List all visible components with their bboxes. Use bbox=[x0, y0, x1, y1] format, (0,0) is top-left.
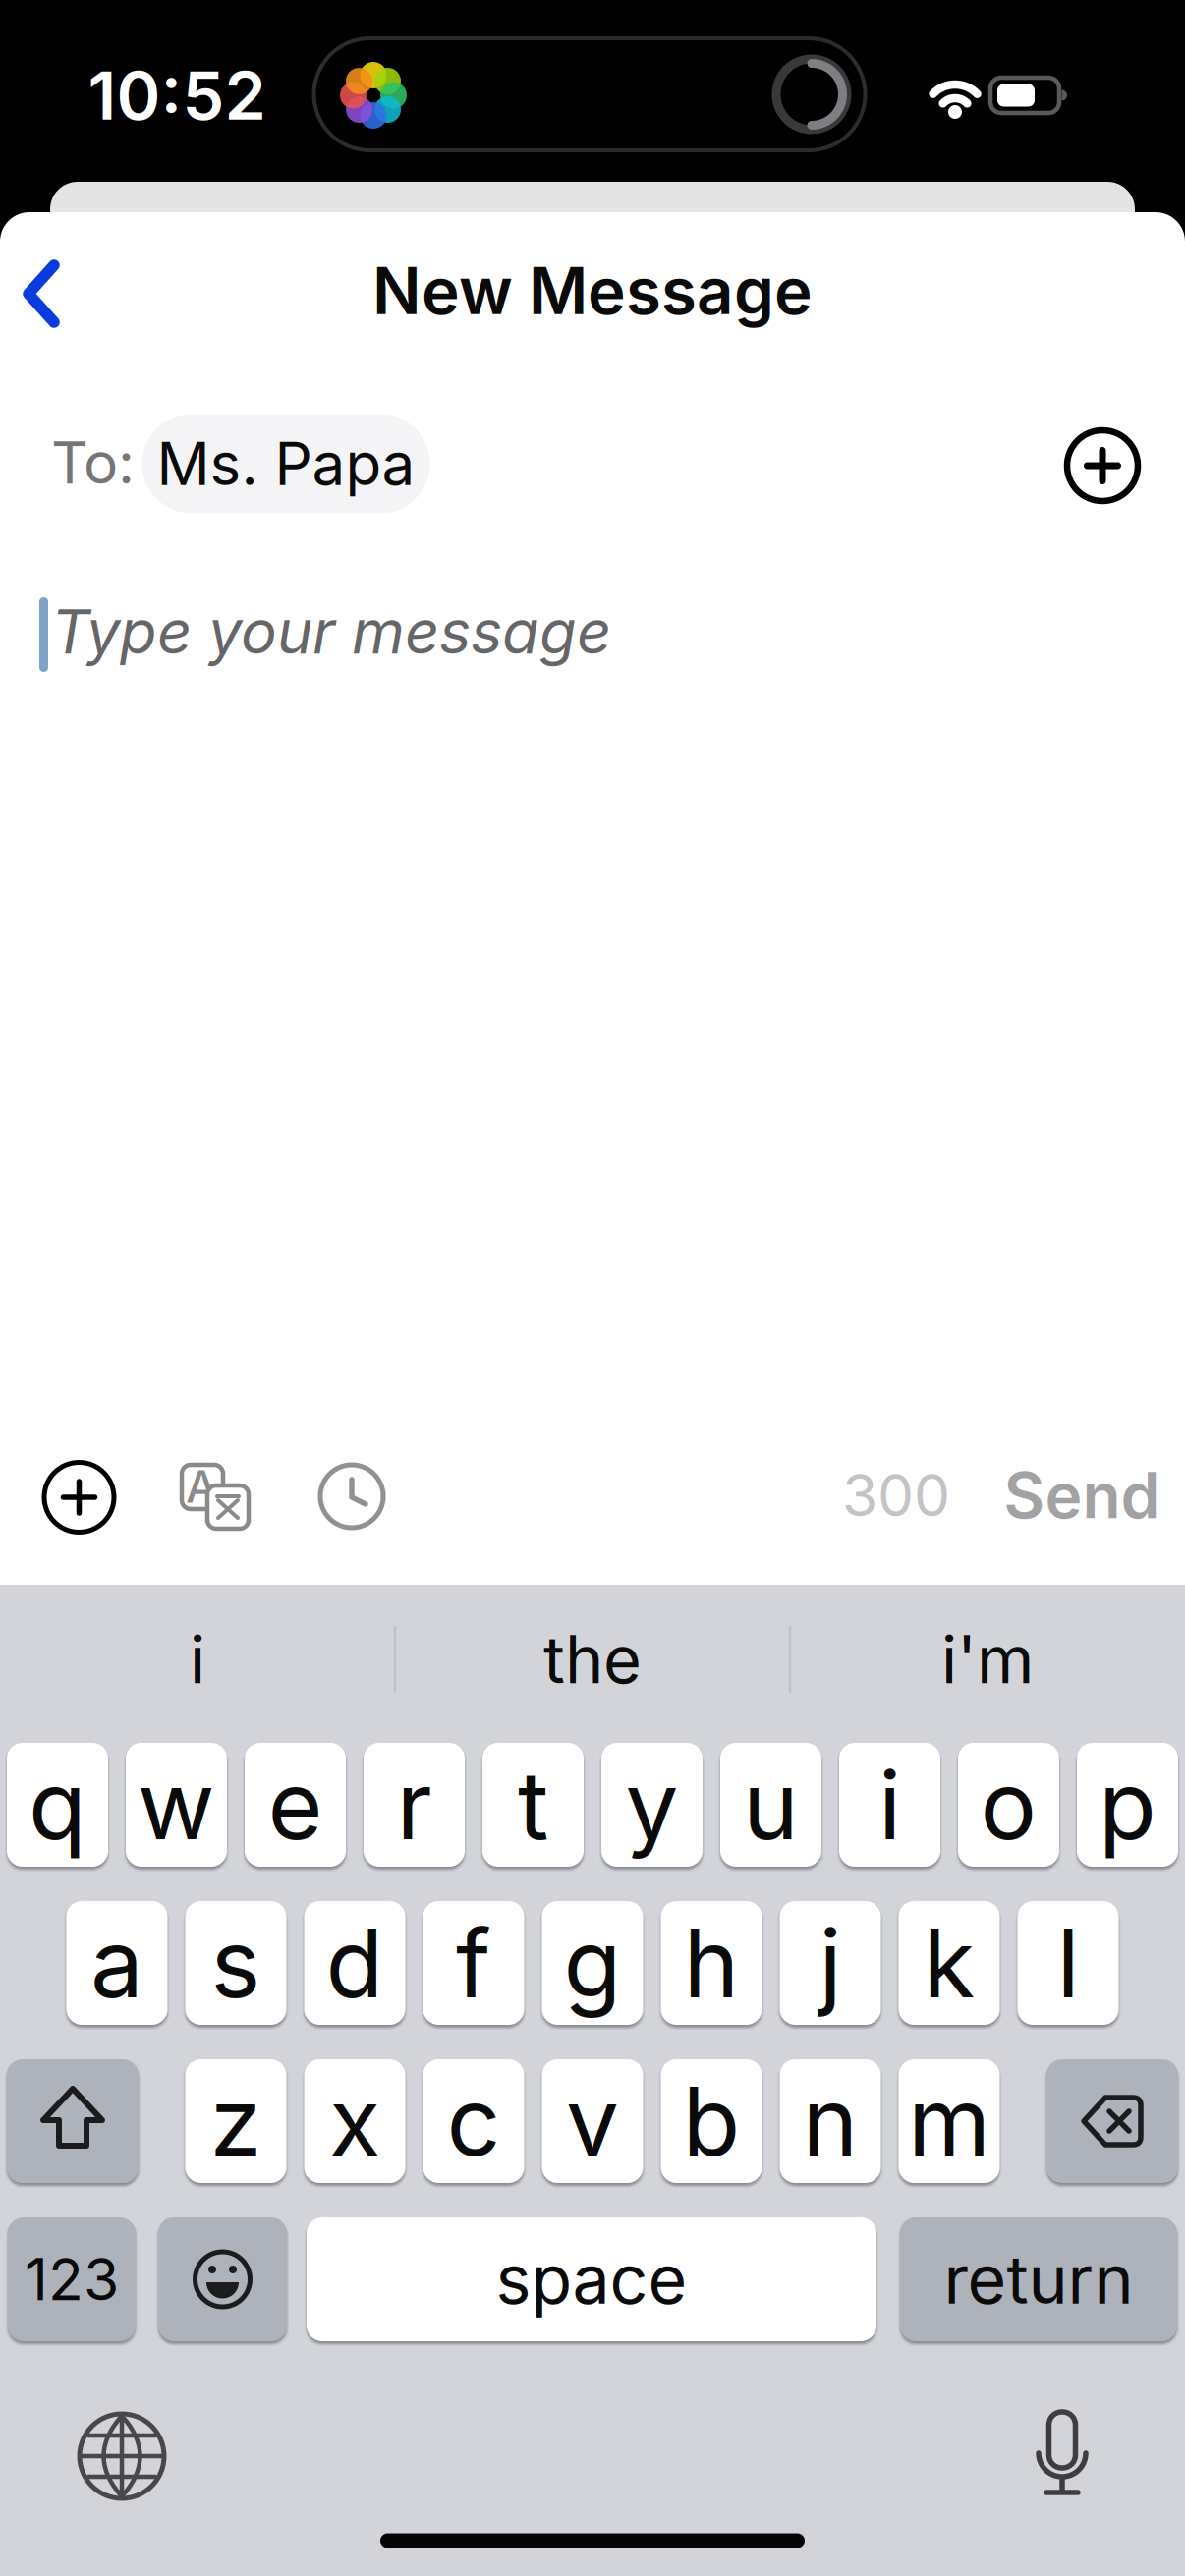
staticText: w bbox=[138, 1749, 215, 1860]
button[interactable]: r bbox=[364, 1743, 465, 1867]
staticText: h bbox=[683, 1907, 739, 2019]
staticText: k bbox=[923, 1907, 975, 2019]
button[interactable]: Emoji bbox=[158, 2217, 287, 2341]
button[interactable]: return bbox=[900, 2217, 1177, 2341]
staticText: m bbox=[908, 2066, 990, 2177]
button[interactable]: o bbox=[958, 1743, 1059, 1867]
button[interactable]: Translate bbox=[180, 1463, 251, 1530]
button[interactable]: x bbox=[304, 2059, 405, 2183]
button[interactable]: p bbox=[1077, 1743, 1178, 1867]
button[interactable]: a bbox=[66, 1901, 168, 2025]
staticText: l bbox=[1057, 1907, 1079, 2019]
staticText: x bbox=[329, 2066, 380, 2177]
staticText: q bbox=[28, 1749, 86, 1860]
staticText: s bbox=[211, 1907, 261, 2019]
staticText: j bbox=[819, 1907, 842, 2019]
button[interactable]: v bbox=[542, 2059, 643, 2183]
button[interactable]: g bbox=[542, 1901, 643, 2025]
staticText: b bbox=[682, 2066, 740, 2177]
staticText: f bbox=[456, 1907, 491, 2019]
button[interactable]: Next Keyboard bbox=[80, 2414, 164, 2498]
staticText: the bbox=[543, 1621, 642, 1698]
staticText: Send bbox=[1004, 1458, 1160, 1532]
staticText: z bbox=[210, 2066, 262, 2177]
staticText: space bbox=[496, 2240, 687, 2319]
button[interactable]: s bbox=[185, 1901, 286, 2025]
staticText: A bbox=[186, 1460, 217, 1513]
staticText: o bbox=[980, 1749, 1037, 1860]
button[interactable]: e bbox=[245, 1743, 346, 1867]
button[interactable]: f bbox=[423, 1901, 524, 2025]
button[interactable]: Shift bbox=[7, 2059, 139, 2183]
button[interactable]: space bbox=[307, 2217, 876, 2341]
button[interactable]: 123 bbox=[8, 2217, 136, 2341]
staticText: n bbox=[802, 2066, 858, 2177]
staticText: 300 bbox=[842, 1461, 950, 1529]
button[interactable]: b bbox=[661, 2059, 762, 2183]
staticText: u bbox=[743, 1749, 799, 1860]
staticText: New Message bbox=[372, 253, 813, 329]
staticText: d bbox=[326, 1907, 384, 2019]
button[interactable]: t bbox=[482, 1743, 584, 1867]
staticText: 123 bbox=[25, 2245, 119, 2313]
staticText: c bbox=[447, 2066, 501, 2177]
button[interactable]: Back bbox=[22, 259, 65, 328]
button[interactable]: i'm bbox=[796, 1620, 1179, 1699]
staticText: g bbox=[564, 1907, 621, 2019]
staticText: Ms. Papa bbox=[157, 429, 415, 498]
button[interactable]: the bbox=[401, 1620, 784, 1699]
staticText: Type your message bbox=[51, 596, 611, 667]
staticText: To: bbox=[51, 429, 135, 497]
button[interactable]: u bbox=[720, 1743, 821, 1867]
staticText: a bbox=[90, 1907, 143, 2019]
button[interactable]: w bbox=[126, 1743, 227, 1867]
button[interactable]: q bbox=[7, 1743, 108, 1867]
button[interactable]: k bbox=[899, 1901, 1000, 2025]
button[interactable]: Delete bbox=[1046, 2059, 1178, 2183]
button[interactable]: l bbox=[1017, 1901, 1119, 2025]
button[interactable]: h bbox=[661, 1901, 762, 2025]
button[interactable]: y bbox=[601, 1743, 703, 1867]
button[interactable]: Add Contact bbox=[1067, 430, 1138, 501]
staticText: p bbox=[1099, 1749, 1157, 1860]
staticText: 10:52 bbox=[88, 56, 266, 135]
staticText: r bbox=[396, 1749, 432, 1860]
button[interactable]: n bbox=[780, 2059, 881, 2183]
button[interactable]: d bbox=[304, 1901, 405, 2025]
button[interactable]: Ms. Papa bbox=[142, 414, 430, 513]
button[interactable]: z bbox=[185, 2059, 286, 2183]
staticText: e bbox=[268, 1749, 323, 1860]
button[interactable]: c bbox=[423, 2059, 524, 2183]
button[interactable]: m bbox=[899, 2059, 1000, 2183]
button[interactable]: i bbox=[839, 1743, 940, 1867]
staticText: i'm bbox=[941, 1621, 1034, 1698]
staticText: i bbox=[878, 1749, 901, 1860]
button[interactable]: Dictation bbox=[1035, 2410, 1090, 2496]
button[interactable]: Send bbox=[1004, 1458, 1160, 1532]
staticText: return bbox=[944, 2240, 1133, 2319]
staticText: y bbox=[625, 1749, 678, 1860]
button[interactable]: i bbox=[6, 1620, 389, 1699]
staticText: v bbox=[566, 2066, 619, 2177]
button[interactable]: j bbox=[780, 1901, 881, 2025]
staticText: t bbox=[518, 1749, 548, 1860]
staticText: i bbox=[190, 1621, 205, 1698]
button[interactable]: Add Attachment bbox=[44, 1462, 114, 1532]
button[interactable]: Schedule Message bbox=[320, 1465, 383, 1528]
